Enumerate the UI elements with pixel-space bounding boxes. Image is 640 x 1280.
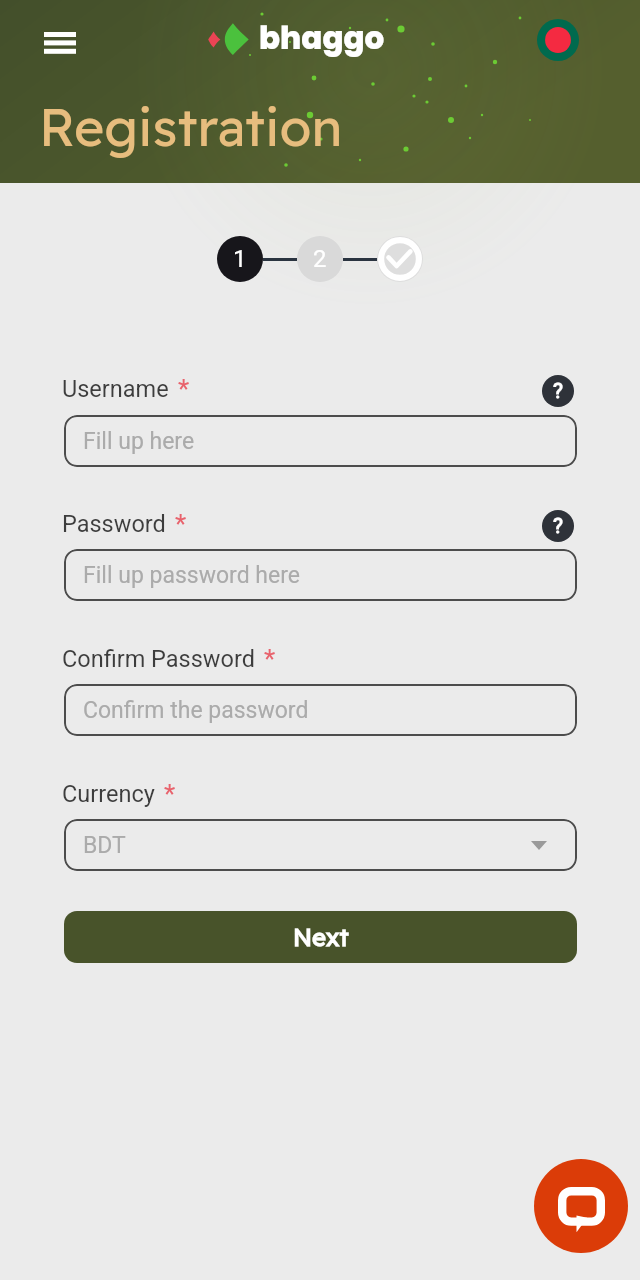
button[interactable]: Confirm the password: [64, 684, 577, 736]
staticText: *: [178, 374, 190, 404]
staticText: ?: [553, 514, 563, 539]
button[interactable]: Fill up here: [64, 415, 577, 467]
staticText: 1: [233, 245, 247, 273]
staticText: Fill up here: [83, 428, 195, 455]
staticText: Confirm Password: [62, 645, 255, 673]
staticText: Next: [293, 922, 349, 952]
button[interactable]: Help about Password: [542, 510, 574, 542]
button[interactable]: 1: [217, 236, 263, 282]
button[interactable]: 2: [297, 236, 343, 282]
button[interactable]: Change language: [532, 14, 584, 66]
staticText: Currency: [62, 780, 155, 808]
staticText: Username: [62, 375, 169, 403]
button[interactable]: [377, 236, 423, 282]
staticText: *: [175, 509, 187, 539]
button[interactable]: Next: [64, 911, 577, 963]
button[interactable]: Open chat support: [534, 1159, 628, 1253]
staticText: *: [264, 644, 276, 674]
staticText: Registration: [39, 94, 343, 159]
button[interactable]: Help about Username: [542, 375, 574, 407]
staticText: ?: [553, 379, 563, 404]
staticText: *: [164, 779, 176, 809]
button[interactable]: BDT: [64, 819, 577, 871]
staticText: Fill up password here: [83, 562, 300, 589]
staticText: bhaggo: [259, 16, 385, 59]
button[interactable]: Open navigation menu: [34, 17, 86, 69]
staticText: Password: [62, 510, 166, 538]
staticText: Confirm the password: [83, 697, 309, 724]
button[interactable]: Fill up password here: [64, 549, 577, 601]
staticText: BDT: [83, 832, 126, 859]
staticText: 2: [313, 245, 327, 273]
